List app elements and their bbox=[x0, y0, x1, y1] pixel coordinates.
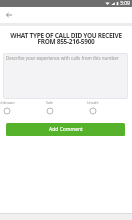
button[interactable]: Unsafe bbox=[83, 100, 103, 115]
button[interactable]: Describe your experience with calls from… bbox=[3, 53, 128, 99]
staticText: WHAT TYPE OF CALL DID YOU RECEIVE FROM 8… bbox=[5, 31, 127, 46]
button[interactable]: Safe bbox=[40, 100, 60, 115]
staticText: Safe bbox=[46, 100, 54, 105]
staticText: Unsafe bbox=[87, 100, 99, 105]
button[interactable]: Add Comment bbox=[6, 123, 125, 136]
button[interactable]: Back bbox=[3, 9, 15, 21]
staticText: Describe your experience with calls from… bbox=[6, 55, 119, 61]
staticText: 3:09 bbox=[120, 0, 130, 7]
button[interactable]: Unknown bbox=[0, 100, 17, 115]
staticText: Add Comment bbox=[49, 126, 83, 133]
staticText: Unknown bbox=[0, 100, 15, 105]
